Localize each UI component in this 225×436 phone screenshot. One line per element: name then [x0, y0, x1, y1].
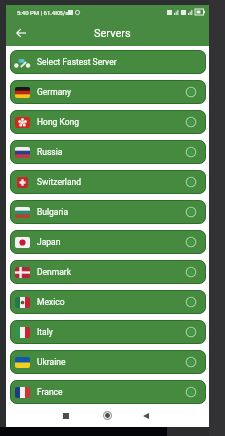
button[interactable]: Russia: [10, 140, 206, 164]
button[interactable]: Mexico: [10, 290, 206, 314]
staticText: Mexico: [37, 297, 65, 307]
staticText: Bulgaria: [37, 207, 69, 217]
button[interactable]: Denmark: [10, 260, 206, 284]
button[interactable]: Germany: [10, 80, 206, 104]
staticText: France: [37, 387, 63, 397]
staticText: Japan: [37, 237, 61, 247]
button[interactable]: Japan: [10, 230, 206, 254]
button[interactable]: Ukraine: [10, 350, 206, 374]
button[interactable]: Bulgaria: [10, 200, 206, 224]
staticText: 5:40 PM | 61.4KB/s: [17, 9, 69, 16]
staticText: Russia: [37, 147, 63, 157]
button[interactable]: Back: [9, 21, 33, 45]
staticText: Select Fastest Server: [37, 57, 117, 67]
button[interactable]: Recent apps: [54, 407, 77, 425]
staticText: Denmark: [37, 267, 72, 277]
staticText: Hong Kong: [37, 117, 80, 127]
button[interactable]: Hong Kong: [10, 110, 206, 134]
button[interactable]: Switzerland: [10, 170, 206, 194]
button[interactable]: Back: [134, 407, 157, 425]
staticText: Ukraine: [37, 357, 66, 367]
staticText: Switzerland: [37, 177, 81, 187]
staticText: Italy: [37, 327, 53, 337]
button[interactable]: Home: [96, 406, 119, 424]
button[interactable]: Select Fastest Server: [10, 50, 206, 74]
staticText: Germany: [37, 87, 71, 97]
staticText: Servers: [94, 27, 131, 40]
button[interactable]: Italy: [10, 320, 206, 344]
button[interactable]: France: [10, 380, 206, 404]
